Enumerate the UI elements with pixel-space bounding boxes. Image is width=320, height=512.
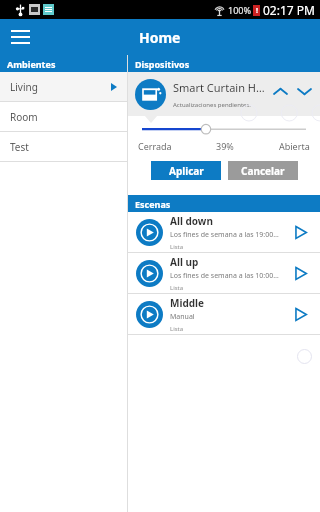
button[interactable]: Cancelar [228, 161, 298, 180]
staticText: Actualizaciones pendientes. [173, 101, 251, 109]
staticText: Room [10, 110, 38, 124]
button[interactable]: Ejecutar Middle [289, 303, 311, 325]
staticText: Manual [170, 312, 195, 322]
button[interactable]: Living [0, 72, 127, 101]
staticText: Lista [170, 284, 184, 292]
button[interactable]: Cerrar cortina [292, 79, 316, 103]
button[interactable]: Aplicar [151, 161, 221, 180]
staticText: All up [170, 255, 199, 269]
staticText: Cerrada [138, 140, 172, 152]
staticText: Abierta [279, 140, 310, 152]
staticText: 100% [228, 4, 251, 16]
staticText: Lista [170, 325, 184, 333]
button[interactable]: Smart Curtain HD 9C0 [128, 72, 320, 116]
button[interactable]: Ejecutar All up [289, 262, 311, 284]
staticText: Cancelar [241, 164, 285, 178]
staticText: Middle [170, 296, 205, 310]
staticText: 39% [216, 140, 234, 152]
staticText: Escenas [135, 198, 171, 210]
staticText: Ambientes [7, 58, 56, 70]
button[interactable]: Room [0, 102, 127, 131]
button[interactable]: Middle [128, 294, 320, 334]
staticText: Lista [170, 243, 184, 251]
staticText: Los fines de semana a las 19:00 hs [170, 230, 280, 240]
staticText: ! [256, 6, 258, 16]
staticText: Living [10, 80, 38, 94]
staticText: Dispositivos [135, 58, 190, 70]
button[interactable]: Abrir cortina [268, 79, 292, 103]
button[interactable]: All up [128, 253, 320, 293]
staticText: Test [10, 140, 29, 154]
staticText: 02:17 PM [263, 2, 315, 18]
button[interactable]: Ejecutar All down [289, 221, 311, 243]
button[interactable]: Test [0, 132, 127, 161]
staticText: Smart Curtain HD 9C0 [173, 80, 265, 95]
staticText: Aplicar [169, 164, 204, 178]
button[interactable]: Open navigation menu [5, 22, 35, 52]
staticText: Los fines de semana a las 10:00 h... [170, 271, 280, 281]
button[interactable]: All down [128, 212, 320, 252]
staticText: Home [139, 28, 181, 47]
staticText: All down [170, 214, 213, 228]
